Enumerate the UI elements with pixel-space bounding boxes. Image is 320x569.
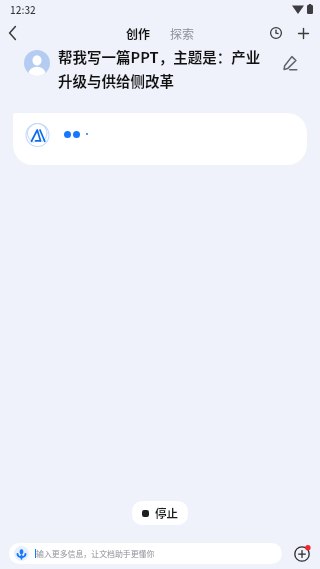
staticText: 探索 (170, 25, 195, 42)
button[interactable] (13, 113, 307, 165)
staticText: 12:32 (10, 2, 36, 16)
button[interactable]: New chat (290, 20, 316, 46)
button[interactable]: Edit (275, 48, 305, 78)
button[interactable]: Back (0, 19, 26, 47)
button[interactable]: 输入更多信息，让文档助手更懂你 (9, 543, 282, 564)
button[interactable]: 创作 (121, 22, 156, 45)
button[interactable]: 探索 (165, 22, 200, 45)
staticText: 输入更多信息，让文档助手更懂你 (36, 548, 155, 559)
staticText: 创作 (126, 25, 151, 42)
button[interactable]: History (263, 20, 289, 46)
button[interactable]: Add (292, 544, 312, 564)
staticText: 停止 (155, 505, 178, 522)
staticText: 帮我写一篇PPT，主题是：产业升级与供给侧改革 (58, 46, 262, 91)
button[interactable]: 停止 (132, 501, 188, 525)
